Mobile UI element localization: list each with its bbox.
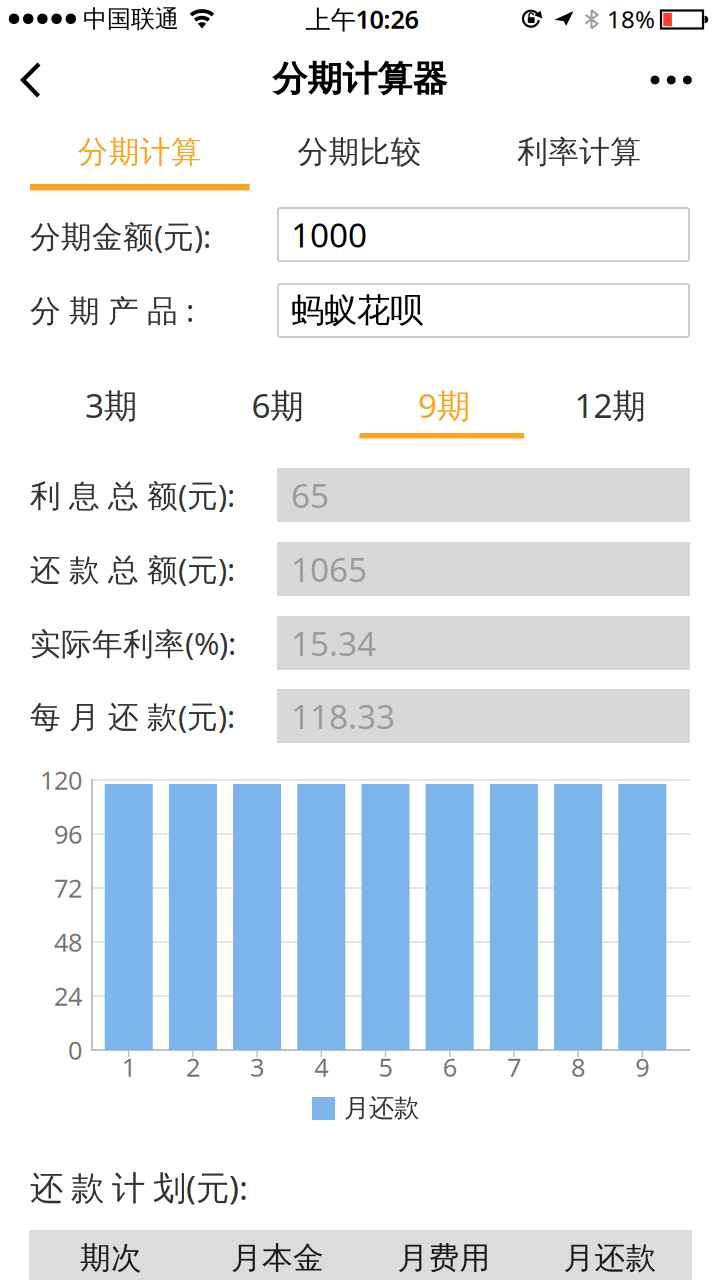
button[interactable]: 3期 [29,377,193,433]
staticText: 分 期 产 品 : [30,290,194,330]
staticText: 8 [571,1050,585,1084]
staticText: 中国联通 [83,4,179,34]
staticText: 还 款 计 划(元): [30,1165,248,1209]
staticText: 5 [378,1050,392,1084]
staticText: 月本金 [231,1239,324,1277]
staticText: 每 月 还 款(元): [30,696,235,736]
staticText: 9期 [418,383,470,427]
staticText: 65 [291,473,329,517]
staticText: 期次 [80,1239,142,1277]
staticText: 96 [54,817,82,851]
button[interactable]: 6期 [195,377,359,433]
staticText: 分期金额(元): [30,216,211,256]
staticText: 24 [54,979,82,1013]
staticText: 72 [54,871,82,905]
staticText: 上午10:26 [305,2,418,36]
staticText: 0 [68,1033,82,1067]
staticText: 月费用 [397,1239,490,1277]
staticText: 还 款 总 额(元): [30,549,235,589]
staticText: 6期 [251,383,303,427]
staticText: 6 [443,1050,457,1084]
staticText: 1000 [291,212,367,257]
staticText: 2 [186,1050,200,1084]
staticText: 月还款 [563,1239,656,1277]
staticText: 7 [507,1050,521,1084]
button[interactable]: More [649,58,693,102]
button[interactable]: 12期 [528,377,692,433]
staticText: 9 [635,1050,649,1084]
staticText: 分期计算 [78,133,202,171]
staticText: 月还款 [344,1092,419,1123]
staticText: 1065 [291,547,367,591]
staticText: 3期 [85,383,137,427]
button[interactable]: 分期计算 [30,124,249,180]
staticText: 18% [607,3,655,35]
button[interactable]: 分期金额 [277,207,690,262]
staticText: 利率计算 [517,133,641,171]
button[interactable]: 9期 [362,377,526,433]
staticText: 3 [250,1050,264,1084]
staticText: 利 息 总 额(元): [30,475,235,515]
button[interactable]: Back [8,52,52,108]
staticText: 分期计算器 [272,58,447,100]
button[interactable]: 分期比较 [250,124,469,180]
staticText: 118.33 [291,694,395,738]
staticText: 实际年利率(%): [30,623,236,663]
staticText: 15.34 [291,621,376,665]
staticText: 分期比较 [297,133,421,171]
staticText: 蚂蚁花呗 [291,290,423,331]
button[interactable]: 分期产品 [277,283,690,338]
staticText: 120 [40,763,82,797]
staticText: 4 [314,1050,328,1084]
staticText: 12期 [574,383,645,427]
staticText: 1 [122,1050,136,1084]
staticText: 48 [54,925,82,959]
button[interactable]: 利率计算 [470,124,689,180]
